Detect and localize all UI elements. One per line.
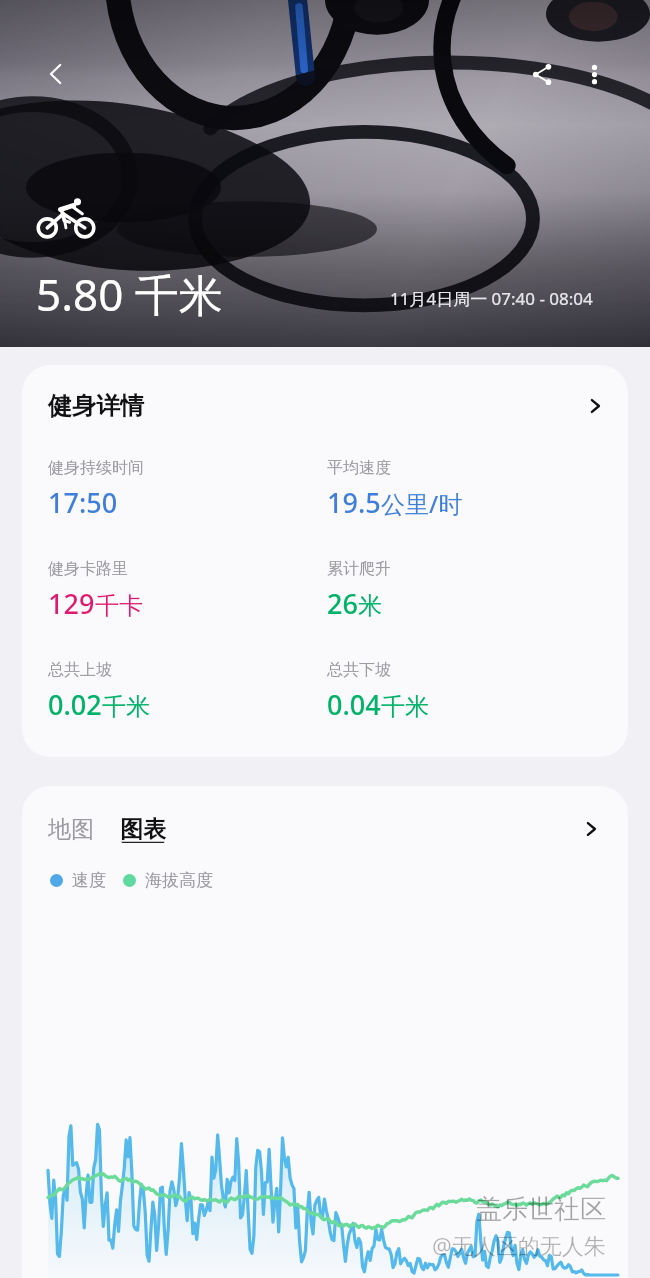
button[interactable]: 图表 (120, 815, 166, 844)
staticText: 米 (358, 591, 382, 621)
staticText: 盖乐世社区 (476, 1193, 606, 1226)
button[interactable]: Open chart details (576, 814, 606, 844)
staticText: 17:50 (48, 484, 118, 521)
staticText: 速度 (72, 870, 106, 891)
staticText: 19.5 (327, 484, 381, 521)
staticText: 健身详情 (48, 391, 144, 421)
staticText: 海拔高度 (145, 870, 213, 891)
staticText: @无人区的无人朱 (432, 1230, 606, 1260)
staticText: 地图 (48, 815, 94, 844)
staticText: 0.02 (48, 686, 102, 723)
staticText: 129 (48, 585, 95, 622)
staticText: 千卡 (95, 591, 143, 621)
staticText: 26 (327, 585, 358, 622)
button[interactable]: 地图 (48, 815, 94, 844)
staticText: 千米 (381, 692, 429, 722)
staticText: 图表 (120, 815, 166, 844)
button[interactable]: Back (32, 50, 80, 98)
staticText: 0.04 (327, 686, 381, 723)
button[interactable]: 健身详情 (22, 365, 628, 757)
staticText: 累计爬升 (327, 559, 391, 579)
button[interactable]: More options (570, 50, 618, 98)
staticText: 健身卡路里 (48, 559, 128, 579)
staticText: 11月4日周一 07:40 - 08:04 (390, 287, 593, 310)
staticText: 健身持续时间 (48, 458, 144, 478)
staticText: 公里/时 (381, 487, 463, 520)
staticText: 5.80 千米 (36, 264, 223, 324)
button[interactable]: Share (518, 50, 566, 98)
staticText: 平均速度 (327, 458, 391, 478)
staticText: 总共上坡 (48, 660, 112, 680)
staticText: 千米 (102, 692, 150, 722)
staticText: 总共下坡 (327, 660, 391, 680)
